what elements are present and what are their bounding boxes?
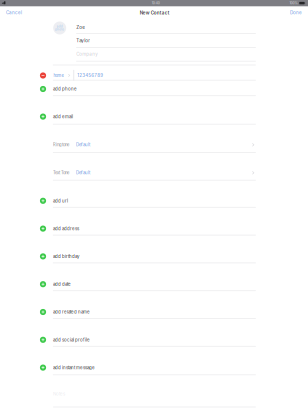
button[interactable]: add instant message — [34, 355, 256, 375]
staticText: add birthday — [53, 254, 79, 259]
button[interactable]: Cancel — [6, 6, 36, 19]
staticText: add instant message — [53, 365, 95, 370]
button[interactable]: home — [53, 69, 72, 81]
button[interactable]: add date — [34, 271, 256, 291]
staticText: Taylor — [76, 38, 90, 43]
staticText: add address — [53, 226, 79, 231]
button[interactable]: add email — [34, 104, 256, 125]
button[interactable]: Text Tone — [34, 160, 256, 181]
staticText: 10:40 — [152, 1, 160, 5]
button[interactable]: Add photo — [53, 21, 66, 34]
staticText: add url — [53, 198, 68, 203]
staticText: Default — [76, 142, 90, 147]
button[interactable]: Ringtone — [34, 132, 256, 153]
staticText: Default — [76, 170, 90, 175]
staticText: Cancel — [6, 10, 22, 15]
staticText: 123456789 — [77, 73, 103, 78]
staticText: home — [53, 73, 63, 78]
staticText: add related name — [53, 309, 90, 315]
staticText: add — [57, 25, 63, 28]
button[interactable]: add related name — [34, 299, 256, 319]
button[interactable]: add birthday — [34, 243, 256, 263]
staticText: New Contact — [140, 10, 170, 15]
staticText: Text Tone — [53, 170, 69, 175]
button[interactable]: add phone — [34, 76, 256, 96]
staticText: Zoe — [76, 25, 85, 30]
staticText: Ringtone — [53, 142, 69, 147]
staticText: 100% — [289, 1, 297, 5]
staticText: Company — [76, 51, 98, 57]
button[interactable]: Done — [276, 6, 302, 19]
staticText: Done — [290, 10, 302, 15]
staticText: photo — [55, 28, 64, 31]
button[interactable]: add address — [34, 216, 256, 235]
staticText: add email — [53, 114, 73, 119]
button[interactable]: Remove home phone — [37, 70, 48, 81]
button[interactable]: add url — [34, 188, 256, 208]
staticText: Notes — [53, 391, 65, 397]
staticText: add phone — [53, 86, 77, 92]
staticText: add date — [53, 282, 71, 287]
staticText: add social profile — [53, 337, 90, 342]
button[interactable]: add social profile — [34, 327, 256, 347]
